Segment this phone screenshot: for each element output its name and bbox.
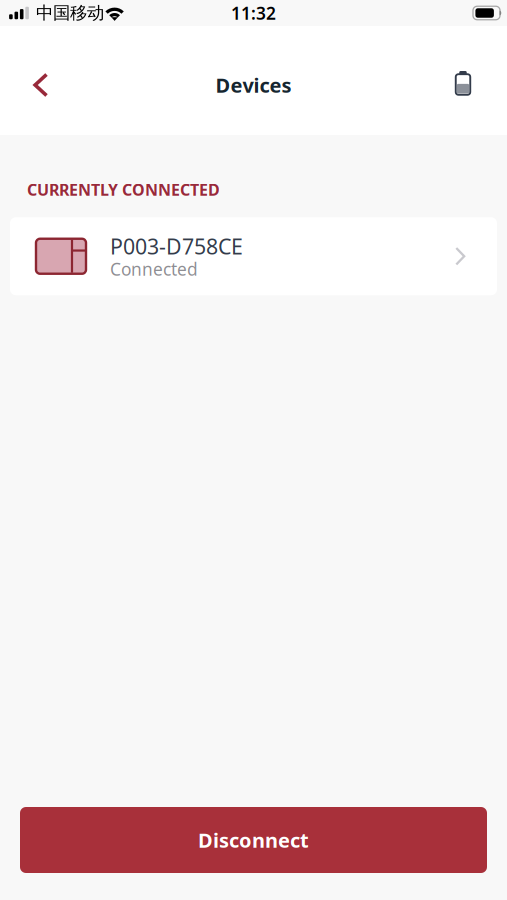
button[interactable]: Battery status: [440, 62, 486, 108]
staticText: Devices: [215, 72, 291, 98]
staticText: Disconnect: [198, 827, 309, 853]
button[interactable]: Back: [18, 62, 64, 108]
staticText: CURRENTLY CONNECTED: [27, 179, 220, 200]
button[interactable]: Disconnect: [0, 807, 507, 873]
staticText: 11:32: [231, 1, 276, 24]
staticText: Connected: [110, 257, 198, 280]
staticText: 中国移动: [36, 2, 104, 24]
staticText: P003-D758CE: [110, 232, 243, 260]
button[interactable]: P003-D758CE: [0, 217, 507, 295]
